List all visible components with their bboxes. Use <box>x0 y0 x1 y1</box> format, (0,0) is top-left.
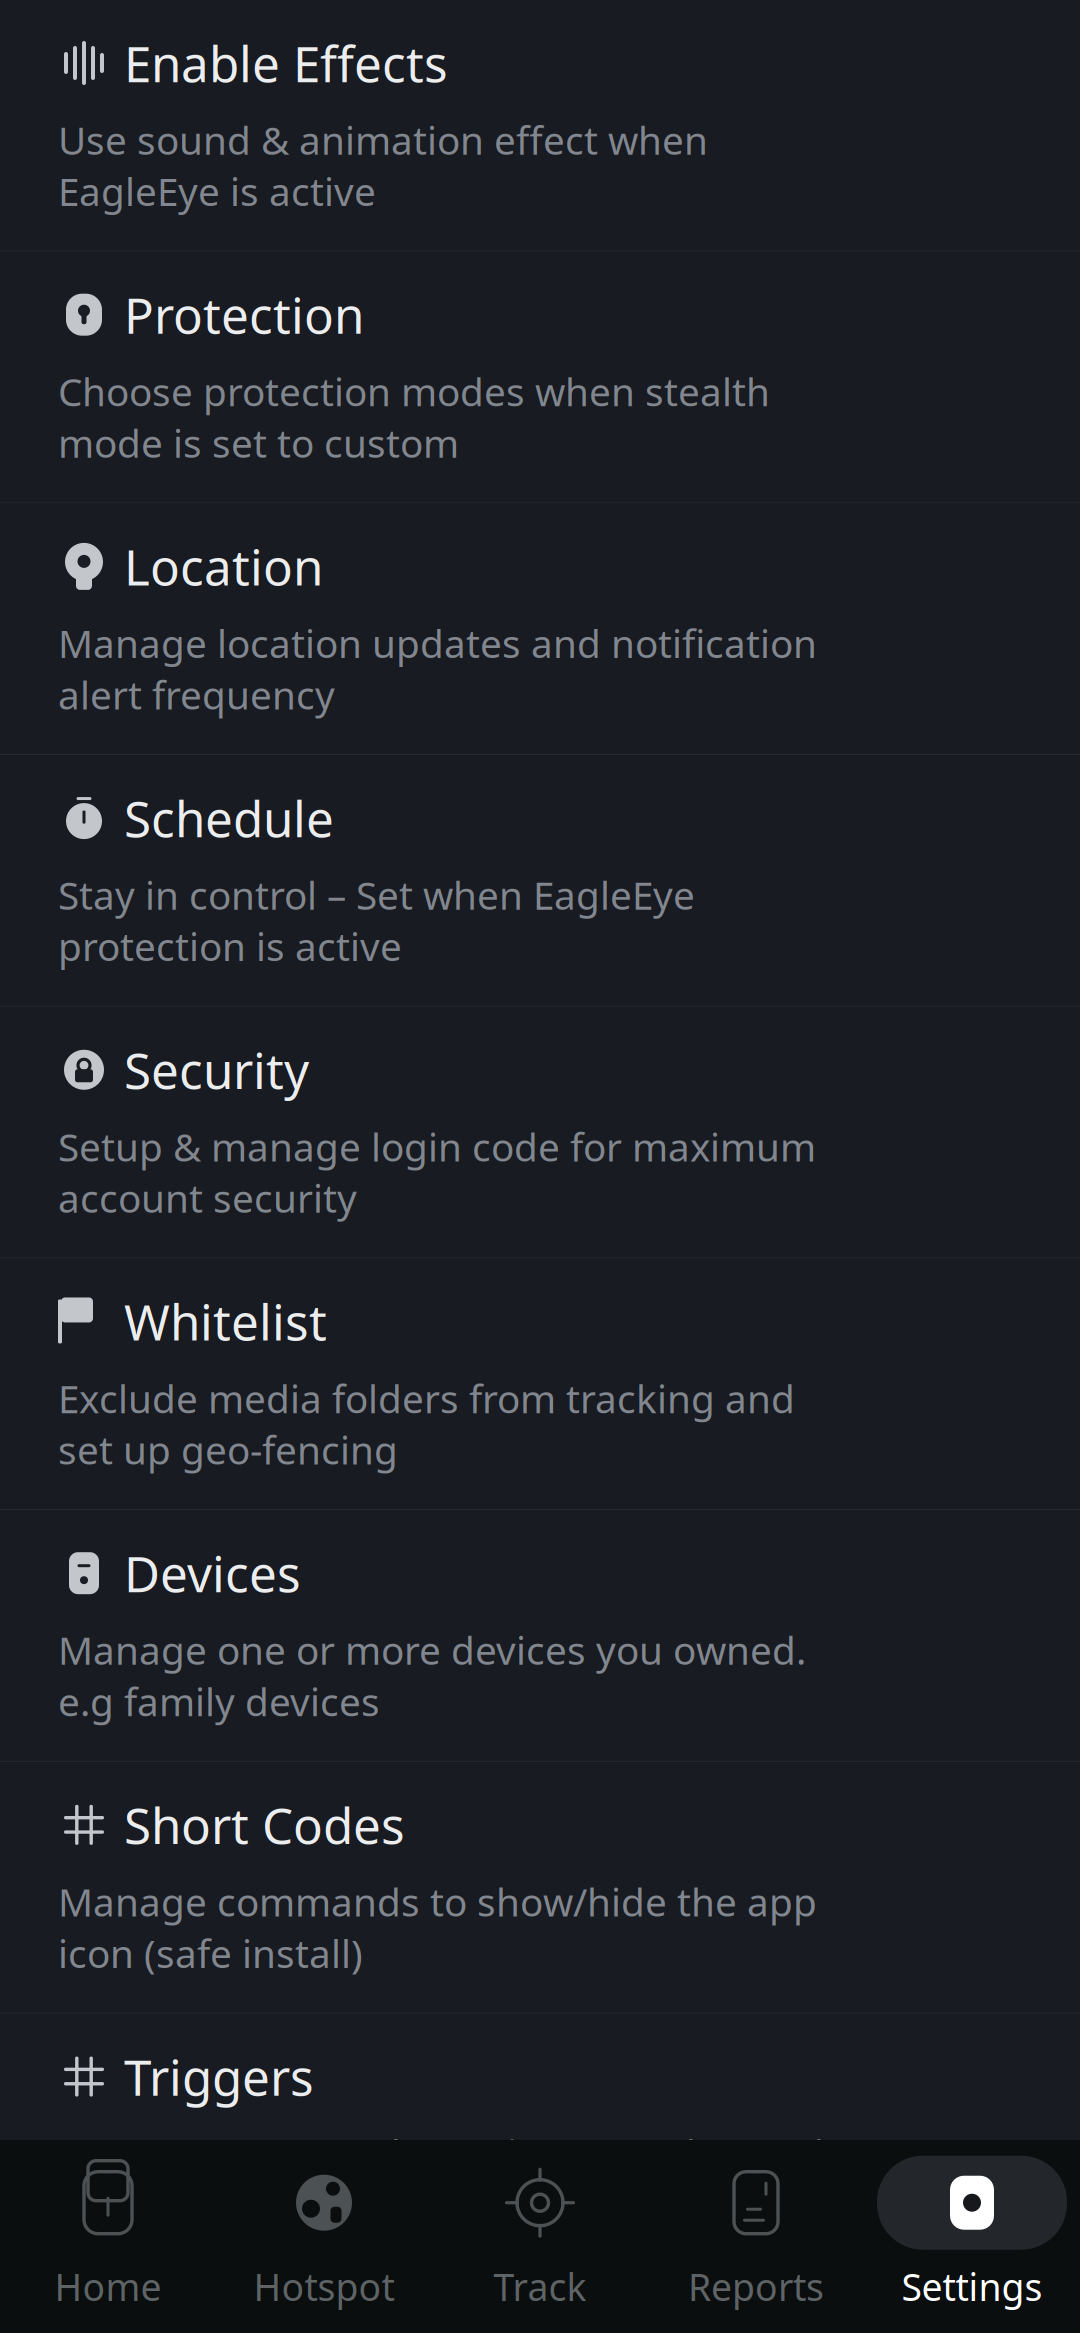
staticText: Enable Effects <box>124 30 448 96</box>
staticText: Devices <box>124 1540 301 1606</box>
staticText: Location <box>124 534 323 599</box>
staticText: Failsafe <box>124 2295 301 2333</box>
staticText: Track <box>493 2262 586 2311</box>
staticText: Reports <box>688 2262 824 2311</box>
button[interactable]: Hotspot <box>216 2142 432 2331</box>
staticText: Setup & manage login code for maximum ac… <box>58 1121 816 1223</box>
button[interactable]: Failsafe <box>0 2265 1080 2333</box>
button[interactable]: Reports <box>648 2142 864 2331</box>
staticText: Stay in control – Set when EagleEye prot… <box>58 869 695 972</box>
staticText: Protection <box>124 282 364 347</box>
staticText: Security <box>124 1037 309 1102</box>
button[interactable]: Triggers <box>0 2014 1080 2264</box>
button[interactable]: Enable Effects <box>0 0 1080 251</box>
staticText: Short Codes <box>124 1792 405 1858</box>
staticText: Manage location updates and notification… <box>58 617 817 720</box>
staticText: Choose protection modes when stealth mod… <box>58 366 770 468</box>
staticText: Manage one or more devices you owned. e.… <box>58 1624 806 1727</box>
button[interactable]: Home <box>0 2142 216 2331</box>
staticText: Hotspot <box>253 2262 394 2311</box>
button[interactable]: Security <box>0 1007 1080 1257</box>
button[interactable]: Protection <box>0 252 1080 502</box>
button[interactable]: Devices <box>0 1510 1080 1761</box>
staticText: Triggers <box>124 2044 314 2109</box>
button[interactable]: Whitelist <box>0 1258 1080 1509</box>
staticText: Manage commands to trigger on-demand loc… <box>58 2128 824 2230</box>
staticText: Exclude media folders from tracking and … <box>58 1372 795 1475</box>
button[interactable]: Track <box>432 2142 648 2331</box>
button[interactable]: Location <box>0 503 1080 754</box>
button[interactable]: Settings <box>864 2142 1080 2331</box>
button[interactable]: Schedule <box>0 755 1080 1006</box>
staticText: Whitelist <box>124 1289 327 1354</box>
staticText: Schedule <box>124 785 334 851</box>
staticText: Settings <box>901 2262 1042 2311</box>
button[interactable]: Short Codes <box>0 1762 1080 2013</box>
staticText: Manage commands to show/hide the app ico… <box>58 1876 817 1979</box>
staticText: Use sound & animation effect when EagleE… <box>58 114 708 217</box>
staticText: Home <box>54 2262 161 2311</box>
